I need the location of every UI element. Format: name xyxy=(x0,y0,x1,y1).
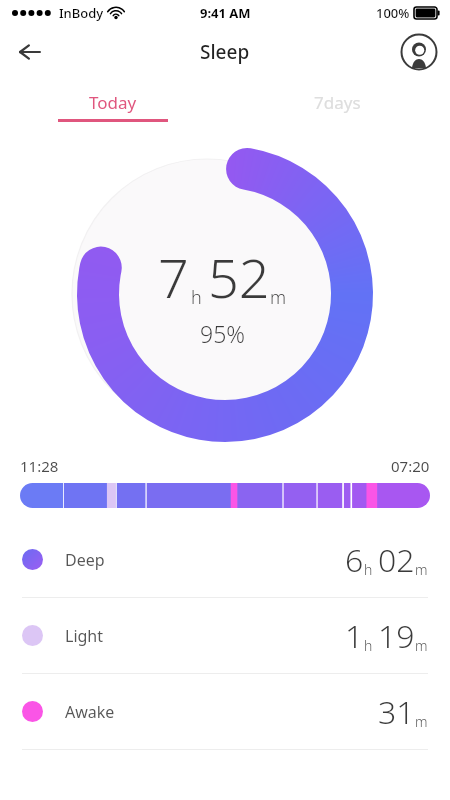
staticText: 6 xyxy=(345,538,364,582)
staticText: 11:28 xyxy=(20,456,59,476)
staticText: h xyxy=(364,636,373,655)
staticText: 100% xyxy=(376,4,410,22)
staticText: m xyxy=(270,285,287,310)
staticText: Awake xyxy=(65,701,115,723)
staticText: 9:41 AM xyxy=(200,4,251,22)
button[interactable]: Today xyxy=(0,78,225,126)
staticText: 02 xyxy=(378,538,415,582)
button[interactable] xyxy=(20,483,430,508)
staticText: 1 xyxy=(345,614,364,658)
staticText: m xyxy=(415,636,428,655)
staticText: h xyxy=(364,560,373,579)
button[interactable]: Deep xyxy=(0,522,450,597)
staticText: Today xyxy=(89,91,137,114)
staticText: 52 xyxy=(208,240,270,314)
staticText: 07:20 xyxy=(391,456,430,476)
staticText: 31 xyxy=(378,690,415,734)
staticText: 95% xyxy=(200,318,245,349)
button[interactable]: Light xyxy=(0,598,450,673)
staticText: 19 xyxy=(378,614,415,658)
staticText: Light xyxy=(65,625,104,647)
button[interactable]: Back xyxy=(8,30,52,74)
staticText: 7 xyxy=(158,240,189,314)
staticText: Deep xyxy=(65,549,105,571)
staticText: m xyxy=(415,712,428,731)
button[interactable]: Awake xyxy=(0,674,450,749)
button[interactable]: Profile xyxy=(398,31,440,73)
staticText: Sleep xyxy=(200,39,250,65)
button[interactable]: 7days xyxy=(225,78,450,126)
staticText: InBody xyxy=(59,4,104,22)
staticText: m xyxy=(415,560,428,579)
staticText: h xyxy=(191,285,202,310)
staticText: 7days xyxy=(314,91,361,114)
